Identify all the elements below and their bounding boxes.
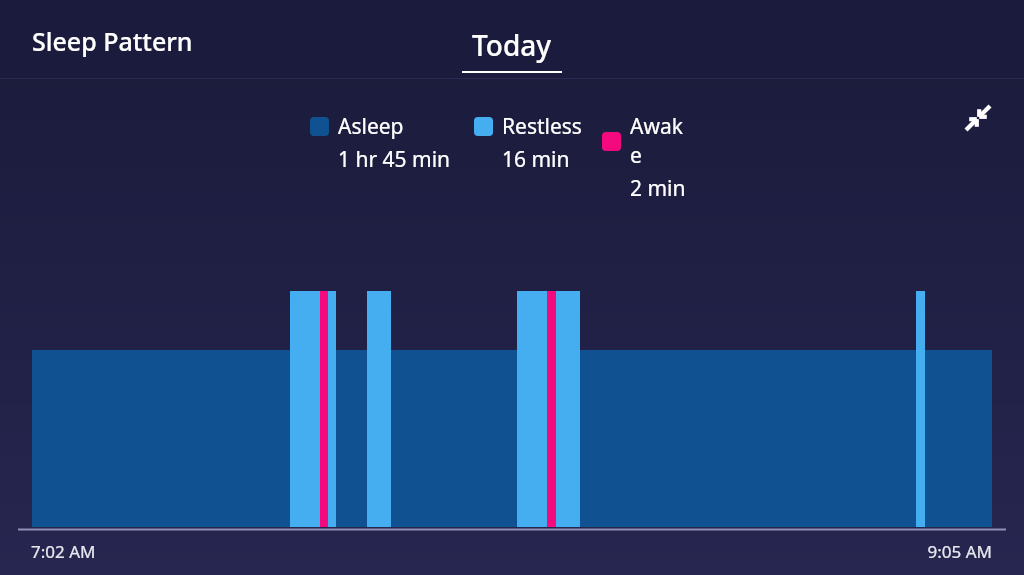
button[interactable]: Asleep bbox=[310, 112, 438, 174]
staticText: Today bbox=[472, 26, 552, 64]
staticText: Sleep Pattern bbox=[32, 24, 193, 58]
staticText: Restless bbox=[502, 112, 582, 141]
staticText: Asleep bbox=[338, 112, 404, 141]
staticText: 2 min bbox=[630, 174, 686, 203]
staticText: 1 hr 45 min bbox=[338, 145, 451, 174]
staticText: 16 min bbox=[502, 145, 570, 174]
staticText: 9:05 AM bbox=[850, 540, 992, 563]
button[interactable]: Restless bbox=[474, 112, 584, 174]
button[interactable]: Sleep Pattern bbox=[32, 24, 193, 58]
staticText: Awake bbox=[630, 112, 692, 170]
button[interactable]: Awake bbox=[602, 112, 692, 203]
button[interactable]: Today bbox=[462, 26, 562, 73]
button[interactable]: Collapse bbox=[958, 98, 998, 138]
staticText: 7:02 AM bbox=[31, 540, 96, 563]
